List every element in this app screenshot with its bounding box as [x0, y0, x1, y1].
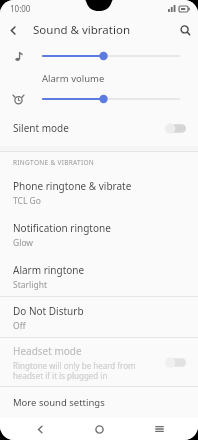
staticText: Sound & vibration [33, 22, 130, 38]
staticText: Off [13, 320, 26, 332]
button[interactable]: Back [0, 17, 26, 43]
staticText: Do Not Disturb [13, 304, 84, 318]
button[interactable]: Back [20, 418, 60, 440]
button[interactable]: Alarm ringtone [0, 256, 198, 296]
button[interactable]: Search [172, 17, 198, 43]
staticText: Phone ringtone & vibrate [13, 179, 132, 193]
staticText: RINGTONE & VIBRATION [13, 158, 95, 167]
staticText: Alarm ringtone [13, 263, 85, 277]
button[interactable]: Silent mode [0, 116, 198, 140]
staticText: Ringtone will only be heard from headset… [13, 360, 138, 381]
staticText: Glow [13, 237, 34, 249]
button[interactable]: Notification ringtone [0, 214, 198, 256]
button[interactable]: More sound settings [0, 387, 198, 418]
staticText: Silent mode [13, 121, 69, 135]
button[interactable]: Recent apps [139, 418, 179, 440]
button[interactable]: Home [79, 418, 119, 440]
staticText: TCL Go [13, 195, 41, 207]
staticText: Alarm volume [42, 72, 105, 85]
button[interactable]: Do Not Disturb [0, 297, 198, 337]
staticText: Starlight [13, 279, 47, 291]
button[interactable]: Headset mode [0, 338, 198, 386]
button[interactable]: Phone ringtone & vibrate [0, 172, 198, 214]
staticText: 10:00 [10, 3, 31, 14]
staticText: Notification ringtone [13, 221, 111, 235]
staticText: Headset mode [13, 344, 82, 358]
staticText: More sound settings [13, 396, 105, 409]
